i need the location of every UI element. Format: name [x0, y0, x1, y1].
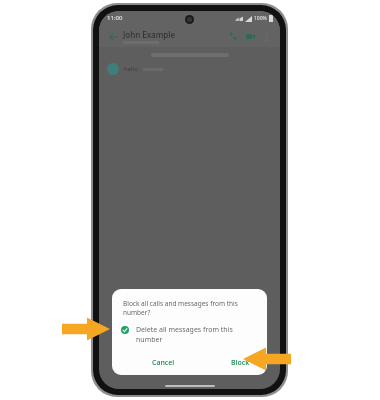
button[interactable]: Delete all messages from this number — [112, 324, 267, 346]
button[interactable]: Call — [226, 29, 240, 43]
staticText: Delete all messages from this number — [136, 325, 257, 345]
button[interactable]: Video call — [243, 29, 257, 43]
button[interactable]: Cancel — [143, 354, 184, 372]
staticText: Block — [231, 358, 250, 368]
other: Pointer to checkbox — [62, 316, 110, 342]
other: Pointer to Block button — [243, 346, 291, 372]
button[interactable]: Back — [106, 30, 119, 43]
staticText: 11:00 — [107, 14, 123, 22]
staticText: John Example — [123, 29, 175, 40]
staticText: Cancel — [152, 358, 175, 368]
staticText: 100% — [254, 15, 267, 22]
staticText: Block all calls and messages from this n… — [123, 299, 257, 317]
staticText: hello — [124, 65, 138, 73]
button[interactable]: Block — [222, 354, 259, 372]
